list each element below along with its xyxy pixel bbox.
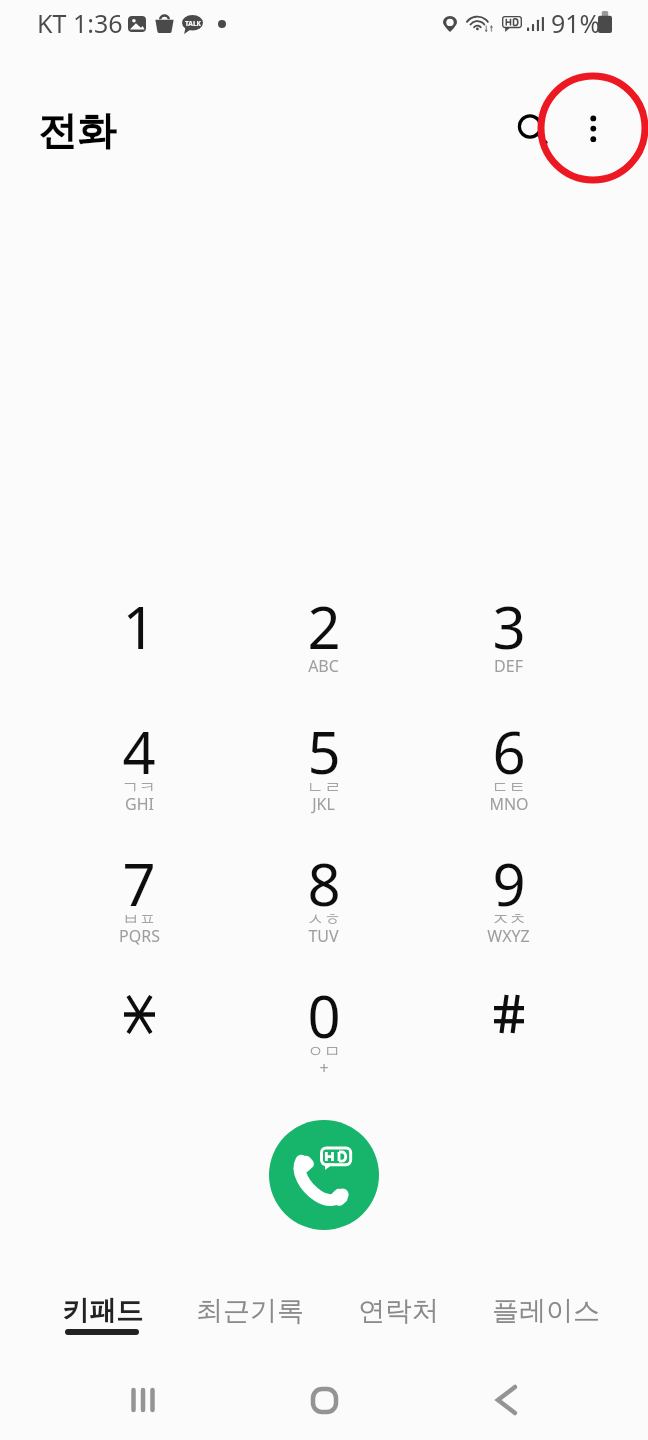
staticText: TALK <box>185 19 201 28</box>
staticText: ABC <box>308 655 339 677</box>
button[interactable]: Call <box>269 1120 379 1230</box>
button[interactable]: 9 <box>416 832 601 952</box>
button[interactable]: Search <box>502 100 558 156</box>
staticText: 2 <box>307 587 341 666</box>
button[interactable]: 키패드 <box>28 1280 176 1358</box>
staticText: DEF <box>494 655 523 677</box>
button[interactable]: 7 <box>47 832 231 952</box>
staticText: ㅈㅊ <box>492 909 526 930</box>
staticText: 9 <box>492 844 526 923</box>
staticText: 6 <box>492 712 526 791</box>
button[interactable]: Back <box>415 1360 596 1440</box>
button[interactable]: 2 <box>231 575 416 695</box>
button[interactable]: More options <box>565 100 621 156</box>
button[interactable]: Home <box>234 1360 415 1440</box>
staticText: 8 <box>307 844 341 923</box>
button[interactable]: 4 <box>47 700 231 820</box>
staticText: + <box>319 1057 329 1079</box>
staticText: 키패드 <box>62 1294 143 1328</box>
staticText: 7 <box>122 844 156 923</box>
staticText: 플레이스 <box>492 1294 600 1328</box>
staticText: MNO <box>489 793 529 815</box>
staticText: ㄴㄹ <box>307 777 341 798</box>
button[interactable]: 0 <box>231 964 416 1084</box>
staticText: PQRS <box>119 925 160 947</box>
button[interactable]: pound <box>416 964 601 1084</box>
staticText: TUV <box>308 925 339 947</box>
staticText: 5 <box>307 712 341 791</box>
staticText: ㄷㅌ <box>492 777 526 798</box>
button[interactable]: 1 <box>47 575 231 695</box>
staticText: 4 <box>122 712 156 791</box>
button[interactable]: star <box>47 964 231 1084</box>
button[interactable]: 6 <box>416 700 601 820</box>
staticText: JKL <box>312 793 335 815</box>
staticText: 전화 <box>38 106 116 155</box>
staticText: ㅇㅁ <box>307 1041 341 1062</box>
button[interactable]: 플레이스 <box>472 1280 620 1358</box>
staticText: 91% <box>551 6 601 40</box>
button[interactable]: 3 <box>416 575 601 695</box>
button[interactable]: 연락처 <box>324 1280 472 1358</box>
button[interactable]: 5 <box>231 700 416 820</box>
staticText: ㄱㅋ <box>122 777 156 798</box>
button[interactable]: Recents <box>52 1360 234 1440</box>
staticText: ㅂㅍ <box>122 909 156 930</box>
button[interactable]: 최근기록 <box>176 1280 324 1358</box>
staticText: GHI <box>125 793 154 815</box>
button[interactable]: 8 <box>231 832 416 952</box>
staticText: 1 <box>122 587 156 666</box>
staticText: WXYZ <box>487 925 530 947</box>
staticText: 연락처 <box>358 1294 439 1328</box>
staticText: 최근기록 <box>196 1294 304 1328</box>
staticText: KT 1:36 <box>37 6 123 40</box>
staticText: 0 <box>307 976 341 1055</box>
staticText: ㅅㅎ <box>307 909 341 930</box>
staticText: 3 <box>492 587 526 666</box>
